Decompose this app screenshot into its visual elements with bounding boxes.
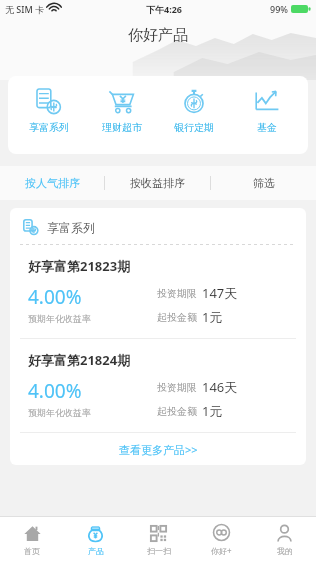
staticText: 银行定期 [174, 121, 214, 134]
button[interactable]: 享富系列 [18, 86, 80, 134]
staticText: 预期年化收益率 [28, 407, 91, 418]
staticText: 按人气排序 [25, 176, 80, 190]
button[interactable]: 扫一扫 [127, 517, 190, 562]
staticText: 你好产品 [0, 26, 316, 45]
staticText: 4.00% [28, 284, 82, 310]
staticText: 起投金额 [157, 311, 197, 324]
staticText: 下午4:26 [146, 3, 182, 15]
staticText: 基金 [257, 121, 277, 134]
staticText: 147天 [202, 284, 238, 302]
button[interactable]: 按收益排序 [105, 166, 210, 200]
staticText: 扫一扫 [147, 546, 171, 556]
staticText: 投资期限 [157, 381, 197, 394]
staticText: 好享富第21824期 [28, 351, 131, 369]
button[interactable]: 首页 [0, 517, 64, 562]
button[interactable]: 产品 [64, 517, 127, 562]
staticText: 按收益排序 [130, 176, 185, 190]
staticText: 享富系列 [47, 220, 95, 235]
staticText: 146天 [202, 378, 238, 396]
staticText: 1元 [202, 308, 223, 326]
button[interactable]: 好享富第21824期 [10, 339, 306, 432]
staticText: 查看更多产品>> [119, 442, 198, 457]
button[interactable]: 好享富第21823期 [10, 245, 306, 338]
button[interactable]: 基金 [236, 86, 298, 134]
button[interactable]: 按人气排序 [0, 166, 104, 200]
staticText: 好享富第21823期 [28, 257, 131, 275]
staticText: 4.00% [28, 378, 82, 404]
staticText: 理财超市 [102, 121, 142, 134]
button[interactable]: 理财超市 [91, 86, 153, 134]
staticText: 预期年化收益率 [28, 313, 91, 324]
button[interactable]: 筛选 [211, 166, 316, 200]
staticText: 享富系列 [29, 121, 69, 134]
staticText: 投资期限 [157, 287, 197, 300]
staticText: 首页 [24, 546, 40, 556]
staticText: 产品 [88, 546, 104, 556]
button[interactable]: 查看更多产品>> [10, 433, 306, 465]
staticText: 无 SIM 卡 [5, 3, 45, 15]
staticText: 筛选 [253, 176, 275, 190]
staticText: 起投金额 [157, 405, 197, 418]
staticText: 我的 [277, 546, 293, 556]
staticText: 99% [270, 3, 288, 15]
button[interactable]: 你好+ [190, 517, 253, 562]
button[interactable]: 我的 [253, 517, 316, 562]
button[interactable]: 银行定期 [163, 86, 225, 134]
staticText: 1元 [202, 402, 223, 420]
staticText: 你好+ [211, 545, 232, 556]
